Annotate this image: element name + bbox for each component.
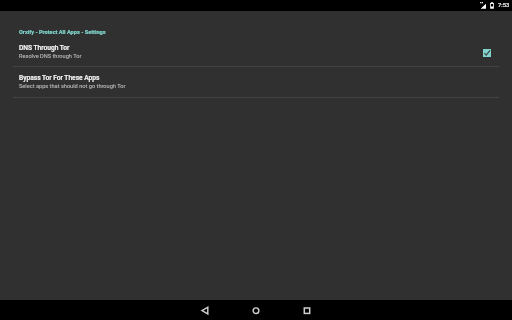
button[interactable]: DNS Through Tor	[0, 39, 512, 64]
staticText: DNS Through Tor	[19, 44, 70, 52]
button[interactable]: Home	[239, 300, 273, 320]
button[interactable]: DNS Through Tor, enabled	[479, 45, 494, 61]
button[interactable]: Recent apps	[290, 300, 324, 320]
staticText: Select apps that should not go through T…	[19, 83, 126, 90]
staticText: Orxify - Protect All Apps - Settings	[19, 29, 106, 36]
button[interactable]: Back	[188, 300, 222, 320]
staticText: 7:53	[498, 2, 510, 9]
button[interactable]: Bypass Tor For These Apps	[0, 66, 512, 96]
staticText: Bypass Tor For These Apps	[19, 74, 100, 82]
staticText: Resolve DNS through Tor	[19, 53, 82, 60]
